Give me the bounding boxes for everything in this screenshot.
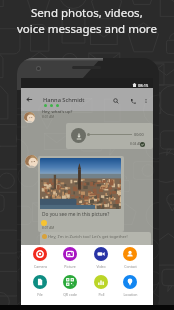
button[interactable]: Call — [127, 95, 138, 106]
staticText: Send photos, videos, — [31, 5, 143, 21]
staticText: Hey, I'm in Zurich too! Let's get togeth… — [48, 234, 128, 240]
staticText: Hanna Schmidt — [43, 96, 85, 104]
staticText: 8:01 AM — [42, 115, 55, 119]
button[interactable]: File — [27, 275, 53, 297]
button[interactable]: Location — [117, 275, 143, 297]
button[interactable]: Video — [88, 247, 114, 269]
staticText: Video — [96, 264, 106, 269]
button[interactable]: More options — [140, 95, 151, 106]
staticText: Hey, what's up? — [42, 109, 73, 115]
staticText: 08:15 — [138, 83, 149, 88]
button[interactable]: Search — [110, 95, 121, 106]
staticText: 00:00 — [134, 132, 144, 137]
staticText: Location — [123, 292, 138, 297]
staticText: File — [37, 292, 43, 297]
button[interactable]: Camera — [27, 247, 53, 269]
button[interactable]: Contact — [117, 247, 143, 269]
staticText: 8:07 AM — [42, 226, 55, 230]
staticText: Do you see me in this picture? — [42, 211, 110, 218]
staticText: Contact — [124, 264, 137, 269]
button[interactable]: Back — [24, 94, 35, 105]
staticText: voice messages and more — [17, 21, 157, 37]
staticText: Poll — [98, 292, 105, 297]
button[interactable]: Poll — [88, 275, 114, 297]
button[interactable]: QR code — [57, 275, 83, 297]
button[interactable]: Picture — [57, 247, 83, 269]
staticText: Picture — [64, 264, 76, 269]
staticText: 8:04 AM — [130, 142, 143, 146]
staticText: Camera — [34, 264, 47, 269]
staticText: QR code — [63, 292, 77, 297]
